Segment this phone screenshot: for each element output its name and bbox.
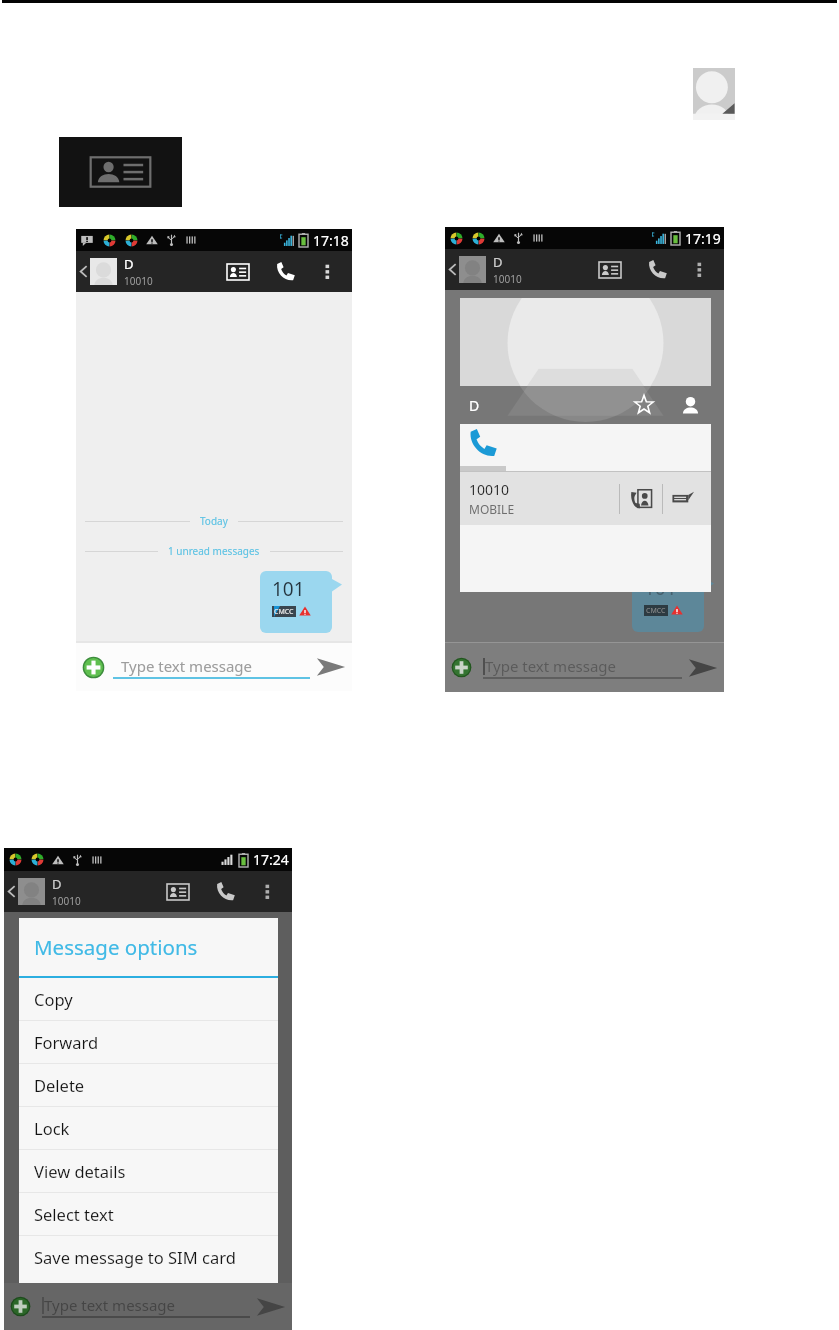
staticText: D <box>52 875 62 893</box>
button[interactable]: Call <box>634 249 681 290</box>
staticText: 10010 <box>52 894 81 908</box>
button[interactable]: More options <box>249 871 285 912</box>
staticText: Type text message <box>121 656 253 676</box>
button[interactable]: View details <box>19 1150 278 1192</box>
button[interactable]: More options <box>681 249 717 290</box>
staticText: 101 <box>644 575 677 601</box>
button[interactable]: Call contact <box>630 488 652 510</box>
button[interactable]: Save message to SIM card <box>19 1236 278 1283</box>
button[interactable]: Call <box>202 871 249 912</box>
button[interactable]: Delete <box>19 1064 278 1106</box>
button[interactable]: Contact card <box>154 871 202 912</box>
staticText: CMCC <box>274 607 294 617</box>
staticText: CMCC <box>646 606 666 616</box>
staticText: View details <box>34 1160 126 1182</box>
button[interactable]: Contact photo <box>693 68 735 120</box>
staticText: 17:18 <box>313 231 349 250</box>
button[interactable]: Copy <box>19 978 278 1020</box>
staticText: Type text message <box>485 656 617 676</box>
button[interactable]: Contact card icon <box>59 137 182 207</box>
staticText: D <box>124 255 134 273</box>
staticText: 17:24 <box>253 850 289 869</box>
staticText: 101 <box>272 576 305 602</box>
button[interactable]: Message <box>672 491 694 506</box>
button[interactable]: More options <box>309 251 345 292</box>
button[interactable]: Add attachment <box>10 1296 31 1317</box>
button[interactable]: Favorite <box>634 395 654 415</box>
button[interactable]: Type text message <box>42 1295 250 1318</box>
button[interactable]: Call <box>262 251 309 292</box>
button[interactable]: Back <box>7 883 16 900</box>
staticText: MOBILE <box>469 501 515 517</box>
button[interactable]: Contact card <box>214 251 262 292</box>
staticText: D <box>469 396 480 415</box>
button[interactable]: Back <box>79 263 88 280</box>
button[interactable]: Back <box>448 261 457 278</box>
staticText: 10010 <box>124 274 153 288</box>
button[interactable]: Send <box>316 656 346 678</box>
staticText: D <box>493 253 503 271</box>
staticText: 17:19 <box>685 229 721 248</box>
button[interactable]: Contact details <box>681 396 700 415</box>
staticText: Save message to SIM card <box>34 1246 236 1268</box>
staticText: Copy <box>34 988 73 1010</box>
staticText: Select text <box>34 1203 114 1225</box>
staticText: Type text message <box>44 1295 176 1315</box>
button[interactable]: Send <box>688 657 718 679</box>
staticText: Today <box>200 514 228 528</box>
staticText: 10010 <box>469 480 510 499</box>
button[interactable]: Add attachment <box>451 657 472 678</box>
button[interactable]: Type text message <box>113 656 310 679</box>
button[interactable]: Type text message <box>483 656 682 679</box>
button[interactable]: Forward <box>19 1021 278 1063</box>
button[interactable]: Send <box>256 1296 286 1318</box>
staticText: Delete <box>34 1074 85 1096</box>
button[interactable]: Add attachment <box>82 656 105 679</box>
staticText: Forward <box>34 1031 99 1053</box>
staticText: Lock <box>34 1117 70 1139</box>
button[interactable]: Select text <box>19 1193 278 1235</box>
button[interactable]: Contact card <box>586 249 634 290</box>
staticText: Message options <box>34 933 198 961</box>
staticText: 1 unread messages <box>168 544 260 558</box>
button[interactable]: Lock <box>19 1107 278 1149</box>
staticText: 10010 <box>493 272 522 286</box>
